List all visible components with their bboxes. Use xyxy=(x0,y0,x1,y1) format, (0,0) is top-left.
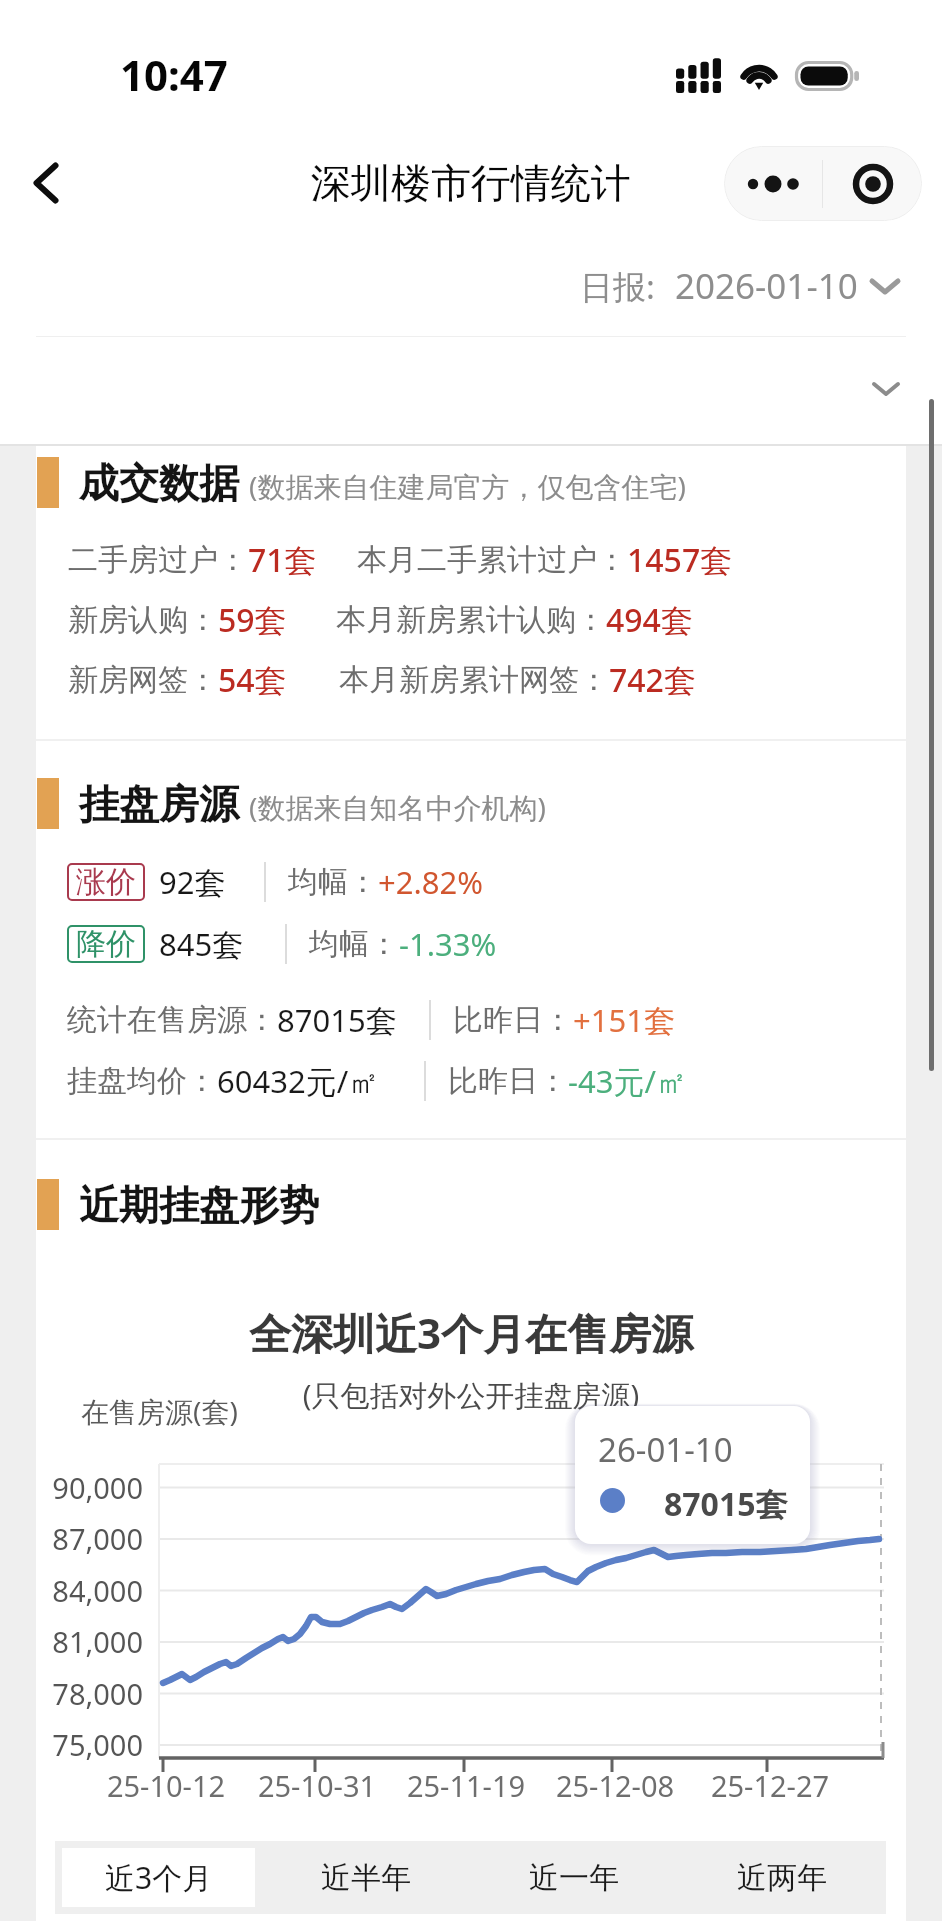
staticText: 25-11-19 xyxy=(386,1766,546,1805)
staticText: 日报: xyxy=(580,264,655,309)
staticText: 25-10-12 xyxy=(86,1766,246,1805)
staticText: -43元/㎡ xyxy=(568,1060,687,1102)
staticText: 本月新房累计认购： xyxy=(336,601,606,639)
staticText: +2.82% xyxy=(378,861,483,903)
staticText: 25-12-27 xyxy=(690,1766,850,1805)
staticText: 90,000 xyxy=(33,1468,143,1507)
button[interactable]: 近3个月 xyxy=(62,1848,255,1907)
staticText: 在售房源(套) xyxy=(81,1392,238,1430)
staticText: 统计在售房源： xyxy=(67,1001,277,1039)
staticText: 26-01-10 xyxy=(598,1427,733,1472)
staticText: 84,000 xyxy=(33,1571,143,1610)
staticText: (数据来自住建局官方，仅包含住宅) xyxy=(249,467,686,505)
staticText: 87015套 xyxy=(664,1482,788,1526)
staticText: 10:47 xyxy=(120,46,228,103)
staticText: 近半年 xyxy=(321,1859,411,1897)
button[interactable]: Expand xyxy=(851,354,921,424)
staticText: 近期挂盘形势 xyxy=(79,1180,319,1230)
staticText: 60432元/㎡ xyxy=(217,1060,380,1102)
staticText: 494套 xyxy=(606,598,693,642)
staticText: 近两年 xyxy=(737,1859,827,1897)
staticText: 71套 xyxy=(248,538,317,582)
staticText: 本月二手累计过户： xyxy=(357,541,627,579)
staticText: 本月新房累计网签： xyxy=(339,661,609,699)
staticText: 近一年 xyxy=(529,1859,619,1897)
staticText: 比昨日： xyxy=(448,1062,568,1100)
staticText: 降价 xyxy=(76,925,136,963)
staticText: (数据来自知名中介机构) xyxy=(249,788,546,826)
staticText: 深圳楼市行情统计 xyxy=(311,158,631,208)
staticText: 二手房过户： xyxy=(68,541,248,579)
staticText: 25-10-31 xyxy=(237,1766,397,1805)
staticText: 845套 xyxy=(159,923,244,965)
staticText: 75,000 xyxy=(33,1725,143,1764)
staticText: 近3个月 xyxy=(105,1857,213,1898)
button[interactable]: 日报: xyxy=(580,262,900,310)
staticText: (只包括对外公开挂盘房源) xyxy=(36,1375,906,1415)
button[interactable]: 近半年 xyxy=(269,1848,463,1907)
staticText: 比昨日： xyxy=(453,1001,573,1039)
staticText: 87015套 xyxy=(277,999,397,1041)
staticText: 1457套 xyxy=(627,538,733,582)
staticText: 25-12-08 xyxy=(535,1766,695,1805)
staticText: 新房网签： xyxy=(68,661,218,699)
staticText: 成交数据 xyxy=(79,458,239,508)
staticText: 92套 xyxy=(159,861,226,903)
staticText: 涨价 xyxy=(76,863,136,901)
staticText: 新房认购： xyxy=(68,601,218,639)
staticText: 742套 xyxy=(609,658,696,702)
button[interactable]: More options xyxy=(724,146,822,221)
staticText: 78,000 xyxy=(33,1674,143,1713)
staticText: 59套 xyxy=(218,598,287,642)
staticText: 87,000 xyxy=(33,1519,143,1558)
staticText: 挂盘均价： xyxy=(67,1062,217,1100)
staticText: 挂盘房源 xyxy=(79,779,239,829)
button[interactable]: Close mini program xyxy=(823,146,922,221)
staticText: 全深圳近3个月在售房源 xyxy=(36,1304,906,1361)
button[interactable]: 近一年 xyxy=(477,1848,671,1907)
staticText: 54套 xyxy=(218,658,287,702)
staticText: -1.33% xyxy=(399,923,497,965)
button[interactable]: 近两年 xyxy=(685,1848,879,1907)
button[interactable]: Back xyxy=(6,143,86,223)
staticText: 81,000 xyxy=(33,1622,143,1661)
staticText: +151套 xyxy=(573,999,675,1041)
staticText: 2026-01-10 xyxy=(675,262,858,310)
staticText: 均幅： xyxy=(288,863,378,901)
staticText: 均幅： xyxy=(309,925,399,963)
